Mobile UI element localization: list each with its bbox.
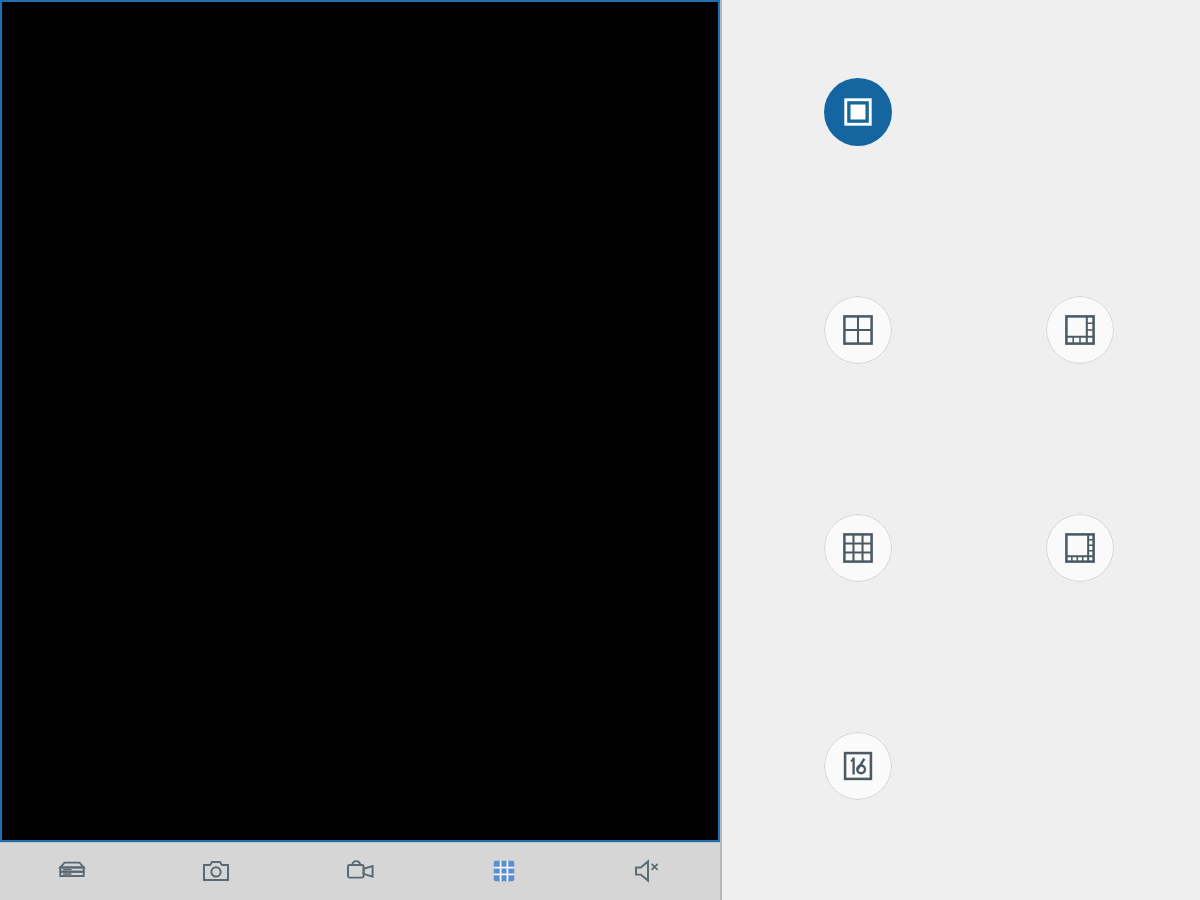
button[interactable]: 16 channel layout (824, 732, 892, 800)
button[interactable]: 3 by 3 grid (824, 514, 892, 582)
button[interactable]: 2 by 2 grid (824, 296, 892, 364)
button[interactable]: 1 plus 5 layout (1046, 296, 1114, 364)
button[interactable]: Devices (0, 842, 144, 900)
button[interactable]: Mute (576, 842, 720, 900)
button[interactable]: Layout (432, 842, 576, 900)
button[interactable]: Record (288, 842, 432, 900)
button[interactable]: Single view (824, 78, 892, 146)
button[interactable]: Snapshot (144, 842, 288, 900)
button[interactable] (0, 0, 720, 842)
button[interactable]: 1 plus 7 layout (1046, 514, 1114, 582)
